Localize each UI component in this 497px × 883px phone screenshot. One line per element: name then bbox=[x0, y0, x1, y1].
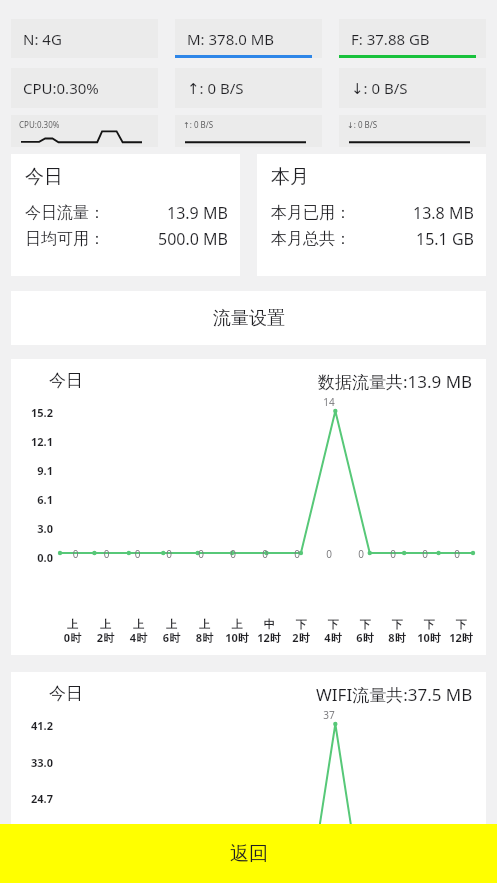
staticText: 今日 bbox=[49, 370, 83, 391]
staticText: 0 bbox=[153, 547, 185, 561]
staticText: 13.8 MB bbox=[413, 202, 474, 224]
staticText: CPU:0.30% bbox=[19, 119, 60, 130]
staticText: 上 6时 bbox=[155, 617, 188, 645]
staticText: 0 bbox=[122, 547, 153, 561]
button[interactable]: 本月 bbox=[257, 154, 486, 276]
staticText: 本月 bbox=[271, 165, 309, 189]
staticText: 33.0 bbox=[11, 755, 53, 770]
staticText: 0 bbox=[313, 547, 345, 561]
staticText: 15.2 bbox=[11, 405, 53, 420]
staticText: 下 8时 bbox=[381, 617, 413, 645]
staticText: 本月总共： bbox=[271, 229, 351, 249]
staticText: 上 0时 bbox=[56, 617, 89, 645]
button[interactable]: ↑: 0 B/S bbox=[175, 115, 322, 147]
button[interactable]: 返回 bbox=[0, 824, 497, 883]
staticText: 0 bbox=[345, 547, 377, 561]
staticText: CPU:0.30% bbox=[23, 78, 99, 98]
staticText: ↓: 0 B/S bbox=[347, 119, 378, 130]
staticText: 0.0 bbox=[11, 550, 53, 565]
staticText: 下 12时 bbox=[445, 617, 477, 645]
button[interactable]: 今日 bbox=[11, 672, 486, 827]
staticText: 13.9 MB bbox=[167, 202, 228, 224]
staticText: ↓: 0 B/S bbox=[351, 78, 408, 98]
staticText: 0 bbox=[217, 547, 249, 561]
staticText: 6.1 bbox=[11, 492, 53, 507]
staticText: 12.1 bbox=[11, 434, 53, 449]
staticText: 9.1 bbox=[11, 463, 53, 478]
staticText: 0 bbox=[409, 547, 441, 561]
staticText: 0 bbox=[377, 547, 409, 561]
button[interactable]: 今日 bbox=[11, 154, 240, 276]
button[interactable]: 今日 bbox=[11, 359, 486, 655]
staticText: 0 bbox=[281, 547, 313, 561]
button[interactable]: CPU:0.30% bbox=[11, 115, 158, 147]
staticText: ↑: 0 B/S bbox=[187, 78, 244, 98]
staticText: 37 bbox=[313, 708, 345, 722]
staticText: 上 4时 bbox=[122, 617, 155, 645]
staticText: 下 4时 bbox=[317, 617, 349, 645]
staticText: 流量设置 bbox=[213, 307, 285, 330]
staticText: F: 37.88 GB bbox=[351, 29, 430, 49]
staticText: 下 10时 bbox=[413, 617, 445, 645]
staticText: 15.1 GB bbox=[416, 228, 474, 250]
staticText: N: 4G bbox=[23, 29, 62, 49]
button[interactable]: ↓: 0 B/S bbox=[339, 115, 486, 147]
staticText: ↑: 0 B/S bbox=[183, 119, 214, 130]
staticText: WIFI流量共:37.5 MB bbox=[316, 683, 473, 706]
staticText: 41.2 bbox=[11, 718, 53, 733]
button[interactable]: 流量设置 bbox=[11, 291, 486, 345]
staticText: 日均可用： bbox=[25, 229, 105, 249]
staticText: 500.0 MB bbox=[158, 228, 228, 250]
staticText: 上 8时 bbox=[188, 617, 221, 645]
staticText: 0 bbox=[441, 547, 473, 561]
staticText: 中 12时 bbox=[253, 617, 285, 645]
staticText: 0 bbox=[91, 547, 122, 561]
button[interactable]: N: 4G bbox=[11, 19, 158, 58]
staticText: 0 bbox=[249, 547, 281, 561]
staticText: 3.0 bbox=[11, 521, 53, 536]
staticText: 本月已用： bbox=[271, 203, 351, 223]
staticText: 今日 bbox=[49, 683, 83, 704]
staticText: 0 bbox=[185, 547, 217, 561]
staticText: 下 6时 bbox=[349, 617, 381, 645]
button[interactable]: F: 37.88 GB bbox=[339, 19, 486, 58]
staticText: 上 10时 bbox=[221, 617, 253, 645]
staticText: 0 bbox=[60, 547, 91, 561]
staticText: 下 2时 bbox=[285, 617, 317, 645]
staticText: 返回 bbox=[230, 842, 268, 866]
staticText: 今日 bbox=[25, 165, 63, 189]
staticText: 数据流量共:13.9 MB bbox=[318, 370, 473, 393]
staticText: 今日流量： bbox=[25, 203, 105, 223]
button[interactable]: M: 378.0 MB bbox=[175, 19, 322, 58]
staticText: 24.7 bbox=[11, 791, 53, 806]
button[interactable]: CPU:0.30% bbox=[11, 68, 158, 108]
staticText: 上 2时 bbox=[89, 617, 122, 645]
staticText: M: 378.0 MB bbox=[187, 29, 275, 49]
button[interactable]: ↑: 0 B/S bbox=[175, 68, 322, 108]
staticText: 14 bbox=[313, 395, 345, 409]
button[interactable]: ↓: 0 B/S bbox=[339, 68, 486, 108]
